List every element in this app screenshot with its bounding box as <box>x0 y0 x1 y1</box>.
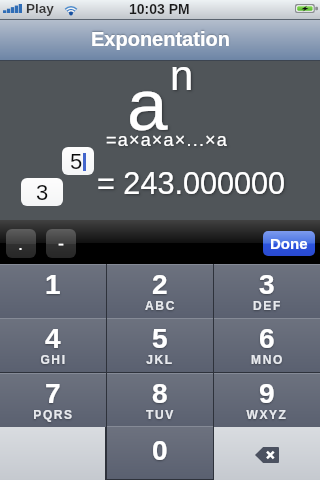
staticText: 3 <box>36 180 49 205</box>
staticText: 1 <box>45 269 61 300</box>
staticText: 7 <box>45 378 61 409</box>
button[interactable]: 7 <box>0 373 106 427</box>
button[interactable]: Minus <box>46 229 76 258</box>
button[interactable]: 1 <box>0 264 106 318</box>
button[interactable]: 6 <box>214 318 320 372</box>
staticText: a <box>127 64 168 146</box>
staticText: Play <box>26 1 54 16</box>
staticText: DEF <box>253 299 282 312</box>
staticText: WXYZ <box>246 408 288 421</box>
button[interactable]: Delete <box>214 427 320 480</box>
staticText: . <box>18 234 24 254</box>
button[interactable]: 3 <box>21 178 63 206</box>
staticText: MNO <box>251 353 284 366</box>
staticText: =a×a×a×...×a <box>106 130 229 150</box>
button[interactable]: 5 <box>107 318 213 372</box>
staticText: ABC <box>145 299 176 312</box>
staticText: 3 <box>259 269 275 300</box>
staticText: Exponentation <box>91 28 230 50</box>
button[interactable]: 8 <box>107 373 213 427</box>
staticText: 5 <box>70 149 83 174</box>
staticText: TUV <box>146 408 175 421</box>
button[interactable]: 4 <box>0 318 106 372</box>
staticText: 2 <box>152 269 168 300</box>
staticText: 0 <box>152 435 168 466</box>
staticText: 9 <box>259 378 275 409</box>
staticText: 4 <box>45 323 61 354</box>
button[interactable]: Decimal point <box>6 229 36 258</box>
staticText: 8 <box>152 378 168 409</box>
staticText: PQRS <box>33 408 74 421</box>
button[interactable]: 2 <box>107 264 213 318</box>
button[interactable]: 0 <box>107 426 213 479</box>
staticText: - <box>58 234 64 254</box>
button[interactable]: 3 <box>214 264 320 318</box>
staticText: 10:03 PM <box>129 1 190 17</box>
staticText: GHI <box>40 353 67 366</box>
staticText: 5 <box>152 323 168 354</box>
button[interactable]: 9 <box>214 373 320 427</box>
staticText: JKL <box>146 353 174 366</box>
staticText: 6 <box>259 323 275 354</box>
button[interactable]: Done <box>263 231 315 256</box>
button[interactable]: 5 <box>62 147 94 175</box>
staticText: = 243.000000 <box>97 166 285 200</box>
staticText: n <box>170 61 194 99</box>
button[interactable]: Blank <box>0 427 105 480</box>
staticText: Done <box>270 235 308 252</box>
